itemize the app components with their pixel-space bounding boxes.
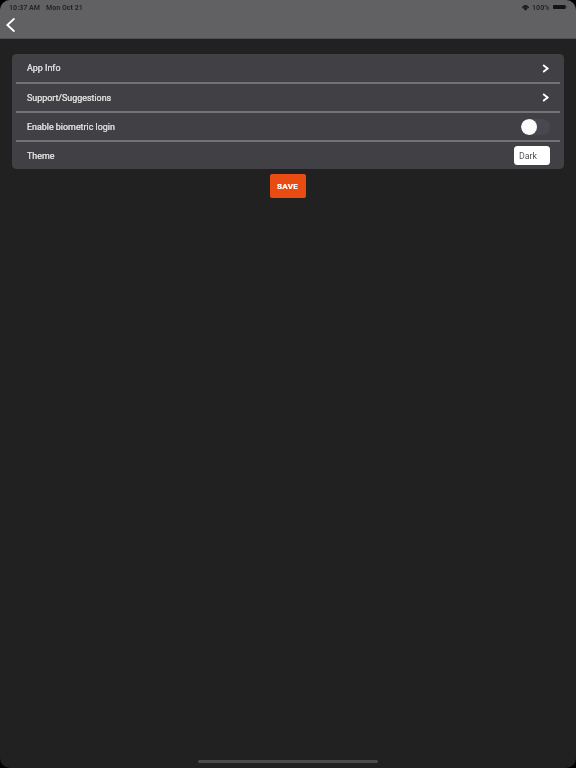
staticText: 100% bbox=[532, 3, 550, 11]
button[interactable]: Support/Suggestions bbox=[12, 84, 564, 111]
button[interactable]: Dark bbox=[514, 146, 550, 165]
button[interactable]: Back bbox=[0, 14, 21, 35]
button[interactable]: SAVE bbox=[270, 174, 306, 198]
button[interactable]: Enable biometric login bbox=[521, 119, 550, 135]
staticText: Mon Oct 21 bbox=[46, 3, 83, 11]
staticText: Support/Suggestions bbox=[27, 93, 112, 103]
staticText: Theme bbox=[27, 151, 55, 161]
staticText: SAVE bbox=[277, 182, 299, 191]
staticText: 10:37 AM bbox=[9, 3, 41, 11]
staticText: Enable biometric login bbox=[27, 122, 115, 132]
staticText: App Info bbox=[27, 63, 61, 73]
staticText: Dark bbox=[519, 151, 537, 161]
button[interactable]: App Info bbox=[12, 54, 564, 82]
